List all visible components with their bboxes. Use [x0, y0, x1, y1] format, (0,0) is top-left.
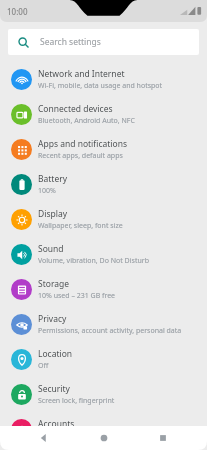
- staticText: Volume, vibration, Do Not Disturb: [38, 256, 149, 266]
- button[interactable]: Apps and notifications: [0, 132, 207, 167]
- staticText: Search settings: [40, 36, 101, 48]
- staticText: 10:00: [7, 6, 28, 17]
- button[interactable]: Connected devices: [0, 97, 207, 132]
- staticText: Apps and notifications: [38, 138, 127, 150]
- other: Search: [18, 37, 29, 48]
- staticText: Bluetooth, Android Auto, NFC: [38, 116, 135, 126]
- staticText: 10% used – 231 GB free: [38, 291, 116, 301]
- staticText: Battery: [38, 173, 68, 185]
- staticText: Storage: [38, 278, 70, 290]
- staticText: Accounts: [38, 418, 75, 430]
- button[interactable]: Storage: [0, 272, 207, 307]
- staticText: Location: [38, 348, 73, 360]
- staticText: Wallpaper, sleep, font size: [38, 221, 123, 231]
- staticText: Permissions, account activity, personal …: [38, 326, 182, 336]
- button[interactable]: Home: [89, 426, 119, 450]
- staticText: Recent apps, default apps: [38, 151, 123, 161]
- staticText: No accounts added: [38, 431, 102, 441]
- staticText: Security: [38, 383, 70, 395]
- button[interactable]: Privacy: [0, 307, 207, 342]
- staticText: Connected devices: [38, 103, 113, 115]
- button[interactable]: Security: [0, 377, 207, 412]
- staticText: 100%: [38, 186, 56, 196]
- staticText: Sound: [38, 243, 64, 255]
- button[interactable]: Back: [29, 426, 59, 450]
- button[interactable]: Location: [0, 342, 207, 377]
- staticText: Screen lock, fingerprint: [38, 396, 115, 406]
- button[interactable]: Recent apps: [148, 426, 178, 450]
- button[interactable]: Sound: [0, 237, 207, 272]
- button[interactable]: Accounts: [0, 412, 207, 447]
- button[interactable]: Search: [8, 29, 199, 55]
- staticText: Privacy: [38, 313, 67, 325]
- button[interactable]: Display: [0, 202, 207, 237]
- staticText: Network and Internet: [38, 68, 125, 80]
- button[interactable]: Battery: [0, 167, 207, 202]
- staticText: Display: [38, 208, 67, 220]
- staticText: Wi-Fi, mobile, data usage and hotspot: [38, 81, 163, 91]
- button[interactable]: Network and Internet: [0, 62, 207, 97]
- staticText: Off: [38, 361, 49, 371]
